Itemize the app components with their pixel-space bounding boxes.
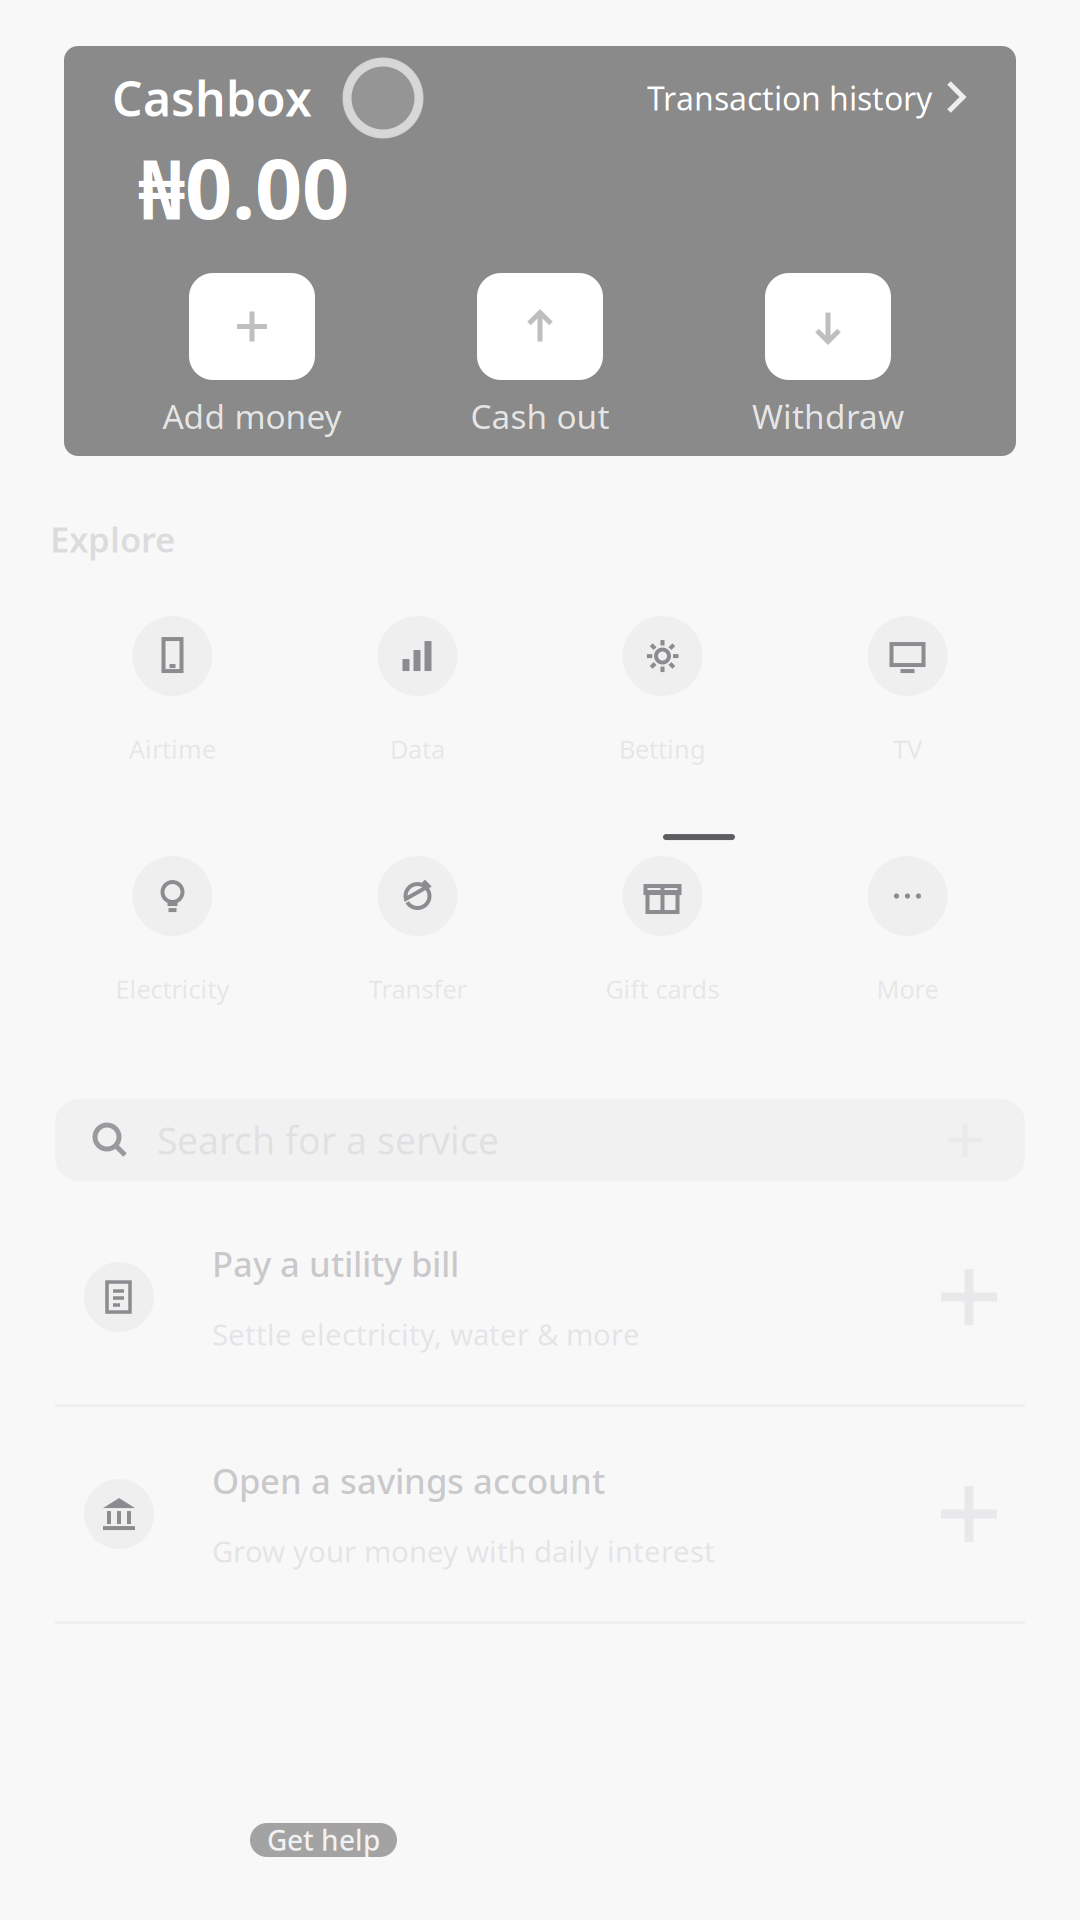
staticText: Airtime <box>129 732 216 766</box>
staticText: Cash out <box>470 394 609 438</box>
staticText: Data <box>390 732 445 766</box>
button[interactable]: Electricity <box>50 856 295 1096</box>
button[interactable]: More <box>785 856 1030 1096</box>
staticText: Transaction history <box>647 77 932 119</box>
button[interactable]: Withdraw <box>684 273 972 438</box>
staticText: Gift cards <box>605 972 719 1006</box>
button[interactable]: Cash out <box>396 273 684 438</box>
button[interactable]: Pay a utility bill <box>0 1190 1080 1404</box>
button[interactable]: Betting <box>540 616 785 856</box>
button[interactable]: Add money <box>108 273 396 438</box>
button[interactable]: Data <box>295 616 540 856</box>
staticText: TV <box>893 732 922 766</box>
staticText: More <box>876 972 938 1006</box>
button[interactable]: Open a savings account <box>0 1407 1080 1621</box>
staticText: ₦0.00 <box>138 132 349 242</box>
button[interactable]: Transfer <box>295 856 540 1096</box>
staticText: Grow your money with daily interest <box>212 1532 715 1571</box>
button[interactable]: Search for a service <box>55 1099 1025 1181</box>
staticText: Add money <box>162 394 341 438</box>
staticText: Electricity <box>115 972 229 1006</box>
staticText: Get help <box>267 1821 380 1859</box>
staticText: Open a savings account <box>212 1457 605 1503</box>
staticText: Transfer <box>368 972 466 1006</box>
button[interactable]: Get help <box>250 1823 397 1857</box>
button[interactable]: Airtime <box>50 616 295 856</box>
staticText: Search for a service <box>157 1115 499 1165</box>
button[interactable]: Transaction history <box>647 77 968 119</box>
button[interactable]: TV <box>785 616 1030 856</box>
staticText: Pay a utility bill <box>212 1240 459 1286</box>
staticText: Cashbox <box>112 66 312 130</box>
button[interactable]: About Cashbox <box>343 58 423 138</box>
staticText: Settle electricity, water & more <box>212 1315 640 1354</box>
staticText: Betting <box>619 732 706 766</box>
button[interactable]: Gift cards <box>540 856 785 1096</box>
staticText: Withdraw <box>752 394 904 438</box>
staticText: Explore <box>50 516 175 562</box>
